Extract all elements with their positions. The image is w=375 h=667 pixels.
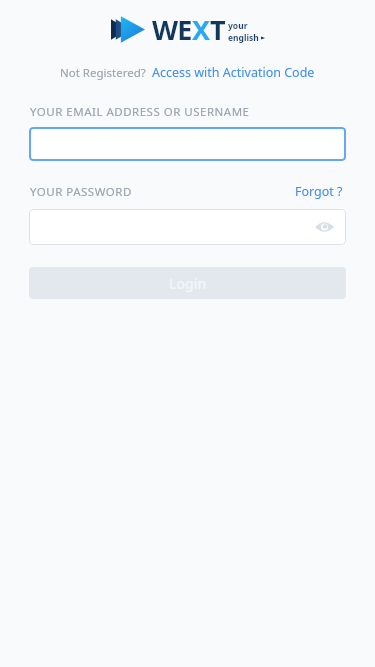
button[interactable]: Forgot ? [293, 181, 345, 202]
button[interactable] [29, 127, 346, 161]
staticText: Not Registered? [60, 65, 146, 81]
button[interactable]: Access with Activation Code [151, 62, 316, 83]
staticText: your [228, 20, 248, 32]
button[interactable]: Show password [312, 215, 336, 239]
button[interactable]: Show password [29, 209, 346, 245]
staticText: X [192, 11, 210, 48]
staticText: english [228, 32, 259, 44]
staticText: Access with Activation Code [152, 64, 315, 81]
staticText: T [210, 11, 225, 48]
staticText: YOUR PASSWORD [30, 184, 132, 200]
staticText: WE [152, 11, 192, 48]
staticText: YOUR EMAIL ADDRESS OR USERNAME [30, 104, 250, 120]
staticText: Login [169, 274, 207, 293]
staticText: Forgot ? [295, 183, 343, 200]
